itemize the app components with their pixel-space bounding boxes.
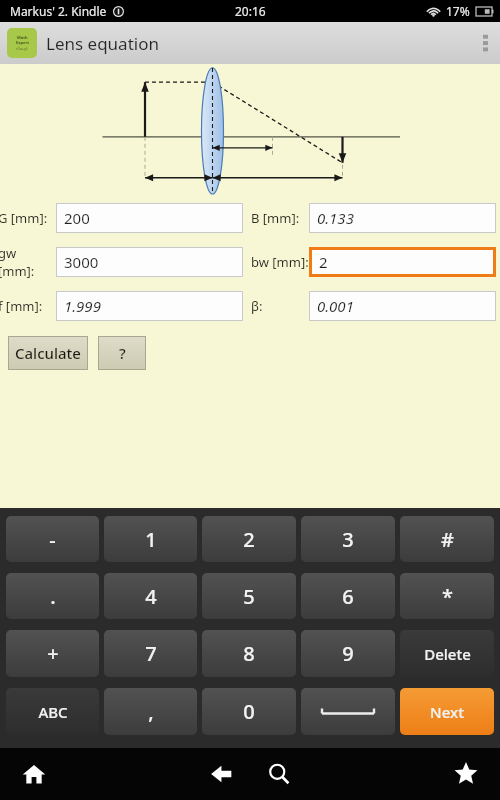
button[interactable]: 1.999 [57,292,242,320]
button[interactable]: 9 [301,630,395,677]
button[interactable]: 2 [202,516,296,562]
button[interactable]: 4 [104,573,197,619]
staticText: 20:16 [235,3,266,19]
staticText: 200 [64,208,90,228]
button[interactable]: Home [14,754,54,794]
staticText: 5 [243,583,255,610]
button[interactable]: App icon [7,28,37,58]
staticText: * [442,583,453,610]
staticText: β: [251,297,263,315]
button[interactable]: Favorites [446,754,486,794]
button[interactable]: 5 [202,573,296,619]
button[interactable]: + [6,630,99,677]
button[interactable]: * [400,573,494,619]
staticText: gw [mm]: [0,244,54,280]
staticText: 3000 [64,252,99,272]
staticText: G [mm]: [0,209,48,227]
staticText: 0 [243,698,255,725]
button[interactable]: 0.133 [310,204,495,232]
staticText: ABC [38,702,68,722]
staticText: 0.133 [317,208,354,228]
button[interactable]: 0 [202,688,296,735]
staticText: Lens equation [46,32,159,55]
staticText: f [mm]: [0,297,43,315]
button[interactable]: 1 [104,516,197,562]
button[interactable]: ABC [6,688,99,735]
staticText: 1.999 [64,296,101,316]
staticText: + [47,640,59,667]
staticText: Delete [424,644,471,664]
button[interactable]: 6 [301,573,395,619]
button[interactable]: # [400,516,494,562]
staticText: Math [17,35,28,40]
staticText: - [49,526,56,553]
button[interactable]: 2 [312,250,493,274]
staticText: 4 [145,583,157,610]
button[interactable]: 8 [202,630,296,677]
button[interactable]: , [104,688,197,735]
staticText: Calculate [15,343,81,363]
staticText: . [50,583,56,610]
staticText: 0.001 [317,296,354,316]
staticText: # [441,526,454,553]
button[interactable]: Next [400,688,494,735]
button[interactable]: Calculate [9,337,87,369]
staticText: , [148,698,154,725]
staticText: 6 [342,583,354,610]
staticText: 2 [243,526,255,553]
staticText: 8 [243,640,255,667]
staticText: Expert [16,40,29,45]
button[interactable]: - [6,516,99,562]
button[interactable]: More options [470,22,500,64]
button[interactable]: Back [199,752,243,796]
button[interactable]: 7 [104,630,197,677]
staticText: bw [mm]: [251,253,309,271]
button[interactable]: 3 [301,516,395,562]
button[interactable]: Delete [400,630,494,677]
button[interactable]: 3000 [57,248,242,276]
staticText: B [mm]: [251,209,300,227]
staticText: 7 [145,640,157,667]
button[interactable]: ? [99,337,145,369]
staticText: Markus' 2. Kindle [10,3,107,19]
staticText: 17% [446,3,470,19]
staticText: 9 [342,640,354,667]
staticText: 3 [342,526,354,553]
button[interactable]: 200 [57,204,242,232]
button[interactable]: . [6,573,99,619]
staticText: 2 [319,252,328,272]
staticText: √(x+y) [16,46,28,51]
staticText: 1 [145,526,157,553]
button[interactable]: Space [301,688,395,735]
button[interactable]: 0.001 [310,292,495,320]
staticText: Next [430,702,464,722]
staticText: ? [119,343,126,363]
button[interactable]: Search [257,752,301,796]
